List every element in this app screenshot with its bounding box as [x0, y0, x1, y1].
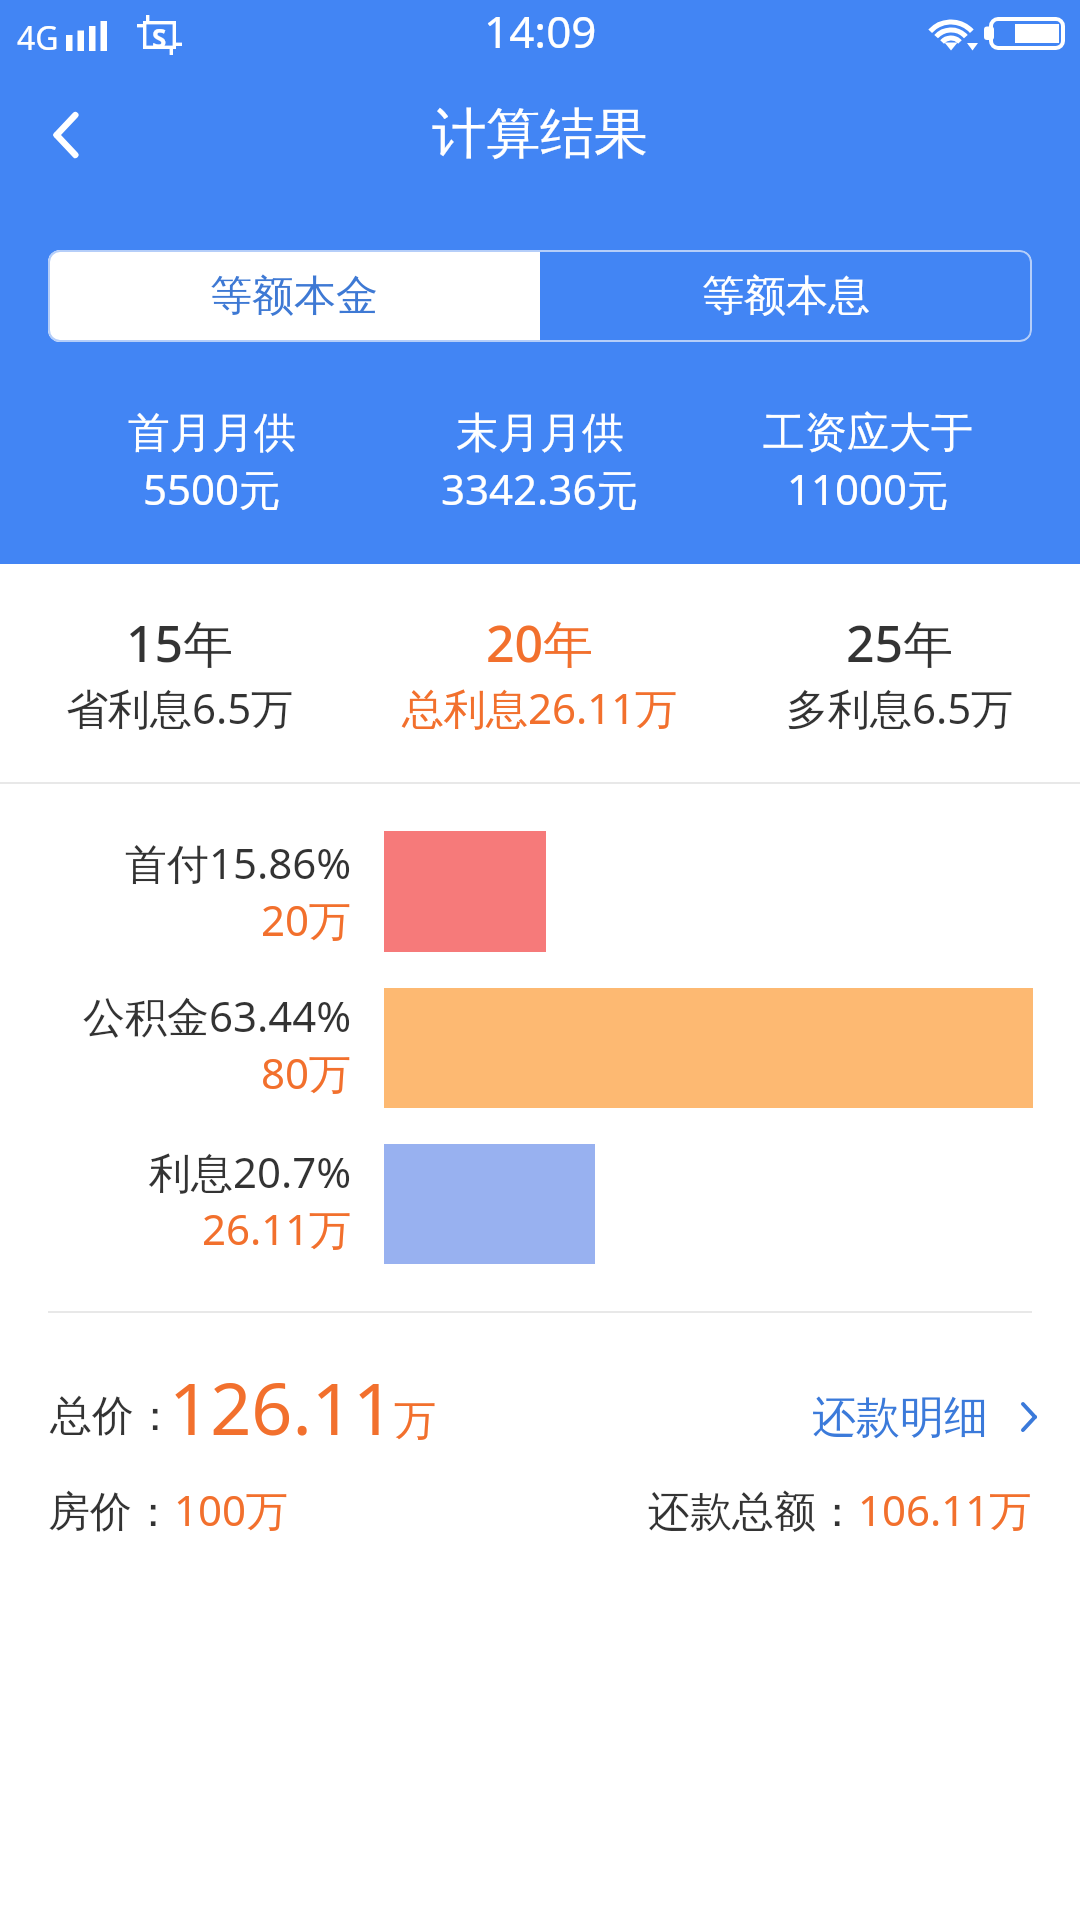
staticText: 26.11万	[202, 1200, 352, 1257]
staticText: 末月月供	[456, 407, 624, 460]
staticText: 省利息6.5万	[66, 679, 294, 736]
staticText: 20年	[486, 609, 594, 677]
staticText: 房价：100万	[48, 1481, 289, 1538]
staticText: 计算结果	[432, 100, 648, 168]
button[interactable]: Back	[16, 85, 116, 185]
staticText: 公积金63.44%	[83, 987, 352, 1044]
button[interactable]: 等额本息	[540, 250, 1032, 342]
button[interactable]: 25年	[720, 609, 1080, 769]
staticText: 5500元	[143, 460, 282, 517]
staticText: 还款总额：106.11万	[648, 1481, 1032, 1538]
staticText: 总利息26.11万	[402, 679, 678, 736]
staticText: 14:09	[484, 1, 597, 61]
staticText: 3342.36元	[441, 460, 639, 517]
staticText: 15年	[126, 609, 234, 677]
staticText: 首月月供	[128, 407, 296, 460]
staticText: 126.11万	[169, 1358, 437, 1456]
staticText: 总价：	[50, 1390, 176, 1443]
staticText: 利息20.7%	[149, 1143, 352, 1200]
staticText: 20万	[261, 891, 352, 948]
button[interactable]: 15年	[0, 609, 360, 769]
staticText: 11000元	[787, 460, 950, 517]
button[interactable]: 等额本金	[48, 250, 540, 342]
staticText: 25年	[846, 609, 954, 677]
staticText: S	[152, 20, 167, 55]
button[interactable]: 20年	[360, 609, 720, 769]
staticText: 等额本金	[210, 270, 378, 323]
staticText: 等额本息	[702, 270, 870, 323]
staticText: 还款明细	[812, 1390, 988, 1445]
staticText: 80万	[261, 1044, 352, 1101]
button[interactable]: 还款明细	[812, 1384, 1046, 1450]
staticText: 工资应大于	[763, 407, 973, 460]
staticText: 首付15.86%	[125, 834, 352, 891]
staticText: 多利息6.5万	[786, 679, 1014, 736]
staticText: 4G	[17, 16, 59, 60]
